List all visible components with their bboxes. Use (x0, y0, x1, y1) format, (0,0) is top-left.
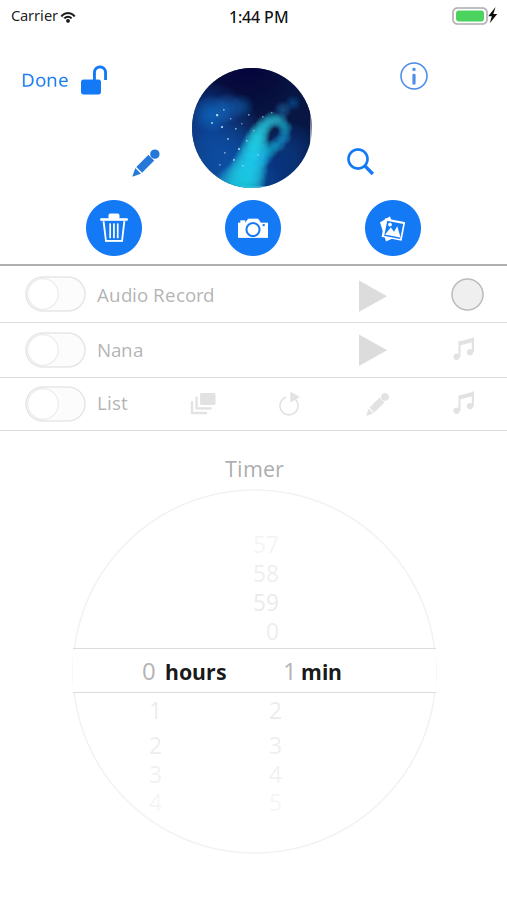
button[interactable] (0, 266, 507, 322)
staticText: 57 (253, 529, 279, 559)
staticText: hours (165, 658, 227, 686)
staticText: 59 (253, 587, 279, 617)
staticText: 2 (269, 695, 282, 725)
button[interactable] (0, 323, 507, 377)
button[interactable]: Camera (225, 200, 281, 256)
staticText: 3 (149, 759, 162, 789)
staticText: 2 (149, 730, 162, 760)
staticText: 0 (266, 616, 279, 646)
button[interactable] (0, 378, 507, 430)
staticText: 1 (283, 655, 297, 687)
staticText: Timer (225, 455, 284, 483)
staticText: 1 (149, 695, 162, 725)
staticText: 4 (269, 759, 282, 789)
button[interactable]: Delete (86, 200, 142, 256)
staticText: Carrier (11, 6, 58, 25)
staticText: List (97, 390, 128, 415)
button[interactable]: Done (15, 62, 75, 97)
button[interactable]: Photos (365, 200, 421, 256)
button[interactable]: Edit (131, 147, 162, 178)
staticText: 1:44 PM (229, 6, 289, 27)
staticText: 58 (253, 558, 279, 588)
staticText: Done (21, 67, 69, 92)
staticText: 3 (269, 730, 282, 760)
staticText: 0 (142, 655, 156, 687)
staticText: 5 (269, 787, 282, 817)
staticText: 4 (149, 787, 162, 817)
staticText: min (301, 658, 342, 686)
staticText: Nana (97, 337, 143, 362)
button[interactable]: Info (400, 62, 428, 90)
button[interactable]: Search (347, 148, 376, 177)
staticText: Audio Record (97, 282, 214, 307)
button[interactable]: Lock (81, 62, 108, 95)
